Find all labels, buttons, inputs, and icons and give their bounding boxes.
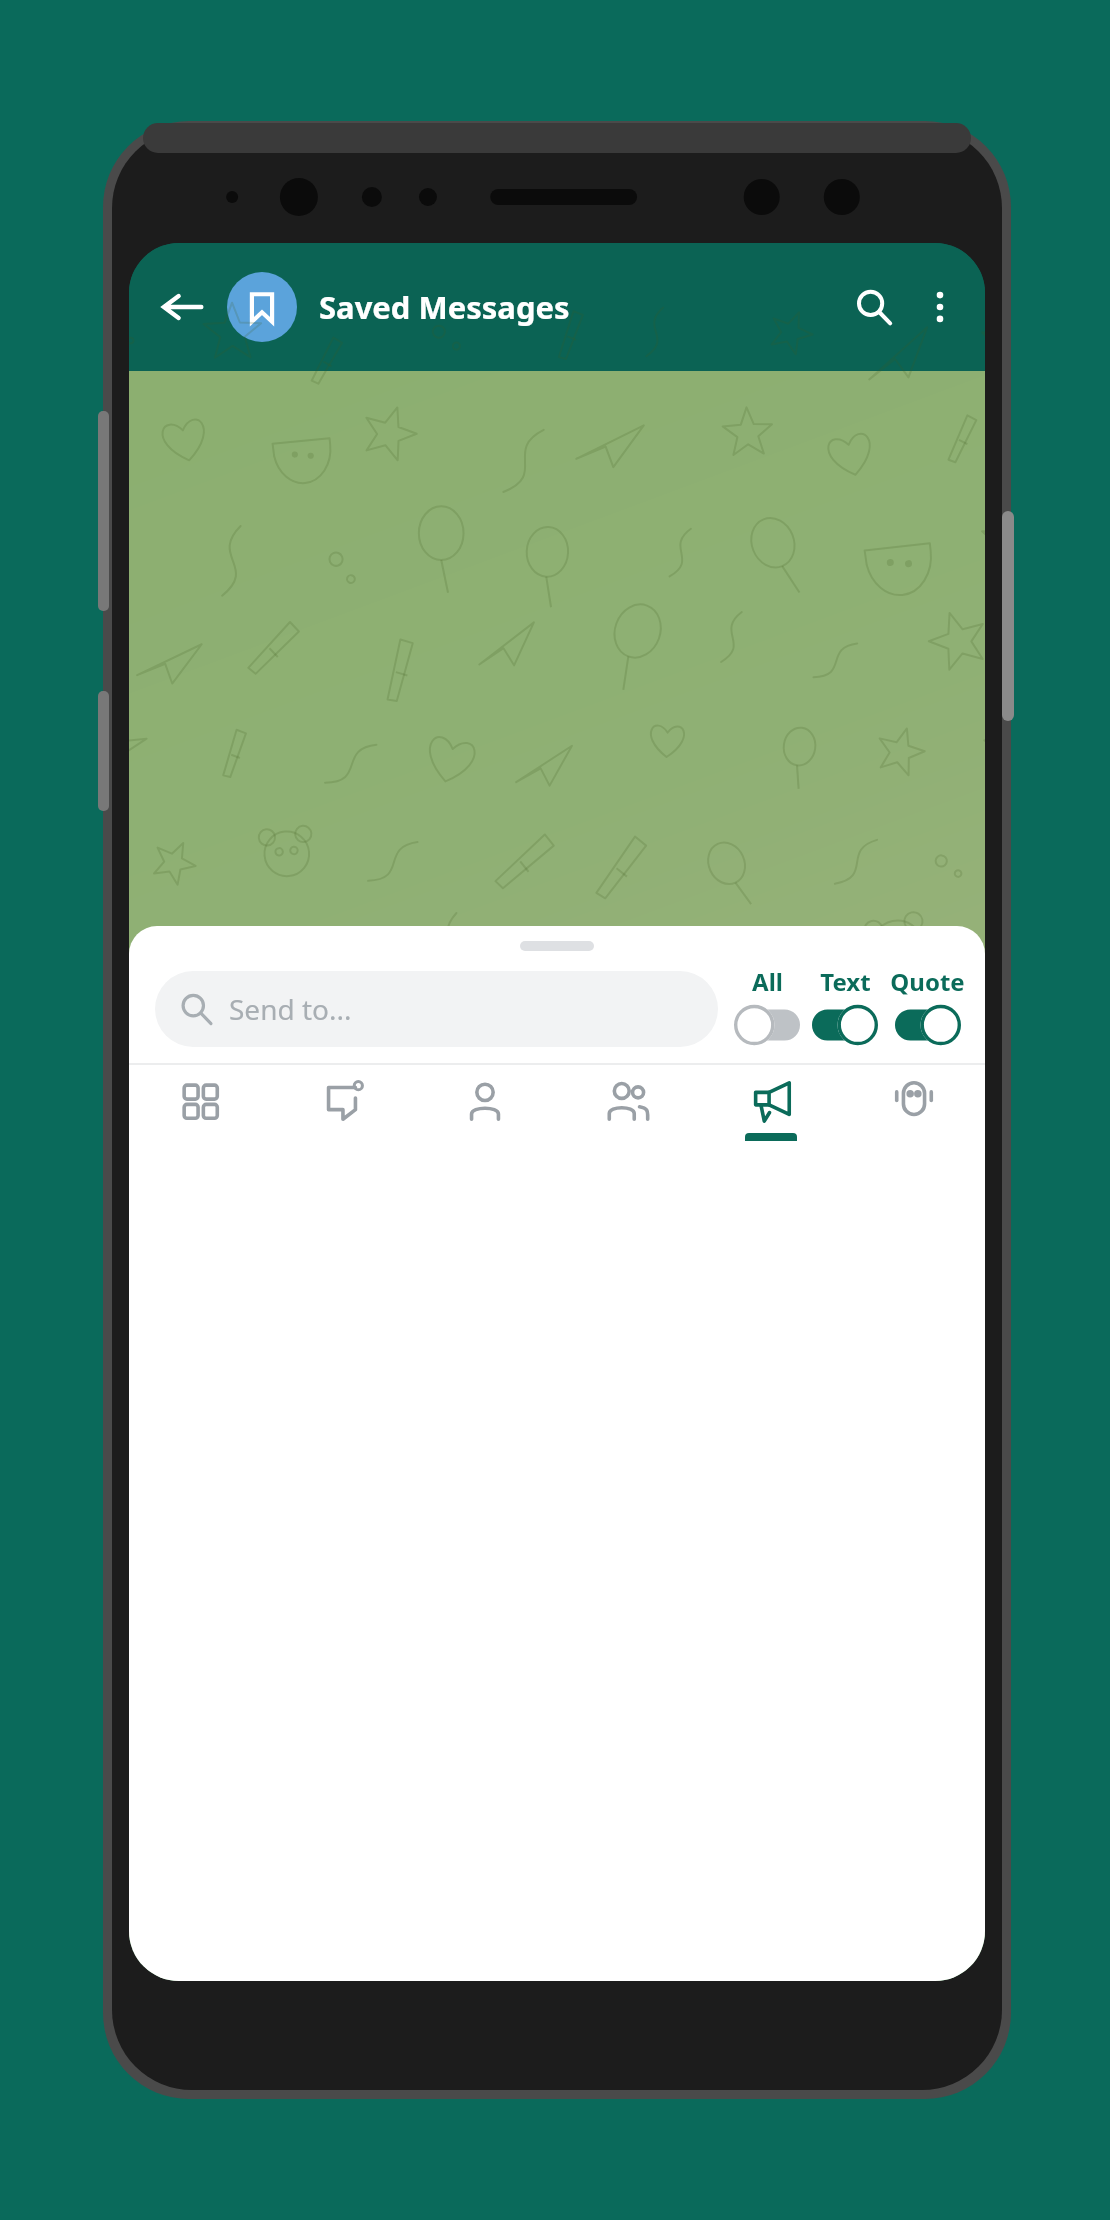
button[interactable]: Contacts bbox=[413, 1065, 556, 1153]
button[interactable]: Saved Messages bbox=[227, 272, 297, 342]
button[interactable]: Back bbox=[145, 270, 219, 344]
staticText: Text bbox=[820, 965, 871, 998]
button[interactable]: All bbox=[734, 965, 800, 1047]
button[interactable]: Search bbox=[837, 271, 909, 343]
button[interactable]: More options bbox=[909, 276, 971, 338]
staticText: Send to... bbox=[229, 990, 352, 1028]
staticText: All bbox=[752, 965, 783, 998]
button[interactable]: Chats bbox=[271, 1065, 413, 1153]
button[interactable]: Channels bbox=[699, 1065, 842, 1153]
button[interactable]: Apps bbox=[129, 1065, 271, 1153]
button[interactable]: Bots bbox=[842, 1065, 985, 1153]
button[interactable]: Text bbox=[812, 965, 878, 1047]
button[interactable]: Quote bbox=[890, 965, 965, 1047]
button[interactable]: Send to... bbox=[155, 971, 718, 1047]
button[interactable]: Groups bbox=[556, 1065, 699, 1153]
staticText: Saved Messages bbox=[319, 286, 570, 328]
staticText: Quote bbox=[890, 965, 965, 998]
